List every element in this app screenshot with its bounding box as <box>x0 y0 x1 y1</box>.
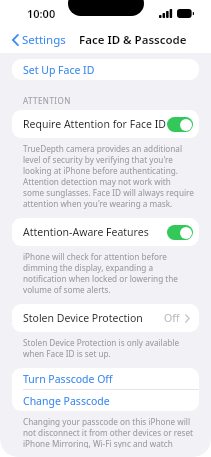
staticText: Face ID & Passcode <box>79 32 187 48</box>
button[interactable]: Toggle setting <box>167 225 193 240</box>
staticText: Require Attention for Face ID <box>23 117 166 131</box>
staticText: Stolen Device Protection <box>23 311 143 325</box>
button[interactable]: Turn Passcode Off <box>12 368 199 389</box>
staticText: 10:00 <box>27 6 56 21</box>
staticText: Turn Passcode Off <box>23 372 113 386</box>
staticText: Attention-Aware Features <box>23 225 149 239</box>
staticText: Set Up Face ID <box>23 63 95 77</box>
staticText: Off <box>164 311 180 325</box>
staticText: ATTENTION <box>23 95 71 106</box>
staticText: TrueDepth camera provides an additional … <box>23 143 194 209</box>
staticText: Changing your passcode on this iPhone wi… <box>23 416 194 448</box>
button[interactable]: Back to Settings <box>9 28 69 52</box>
button[interactable]: Change Passcode <box>12 390 199 411</box>
staticText: Settings <box>22 32 66 48</box>
button[interactable]: Set Up Face ID <box>12 59 199 80</box>
button[interactable]: Attention-Aware Features <box>12 218 199 246</box>
staticText: iPhone will check for attention before d… <box>23 251 194 295</box>
button[interactable]: Stolen Device Protection <box>12 304 199 332</box>
button[interactable]: Toggle setting <box>167 117 193 132</box>
staticText: Stolen Device Protection is only availab… <box>23 337 194 359</box>
staticText: Change Passcode <box>23 394 110 408</box>
button[interactable]: Require Attention for Face ID <box>12 110 199 138</box>
